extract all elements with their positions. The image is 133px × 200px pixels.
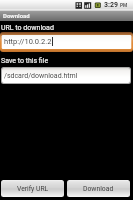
- staticText: PM: [120, 3, 128, 9]
- other: Status icons: [0, 0, 133, 10]
- staticText: /sdcard/download.html: [4, 72, 78, 80]
- staticText: Download: [83, 185, 114, 193]
- button[interactable]: http://10.0.2.2: [0, 32, 133, 52]
- staticText: Download: [3, 12, 30, 19]
- staticText: 3:29: [104, 1, 119, 9]
- button[interactable]: /sdcard/download.html: [1, 67, 131, 84]
- staticText: http://10.0.2.2: [4, 37, 52, 46]
- staticText: URL to download: [1, 24, 54, 32]
- button[interactable]: Download: [67, 180, 130, 197]
- button[interactable]: Verify URL: [1, 180, 64, 197]
- staticText: Save to this file: [1, 57, 49, 65]
- staticText: Verify URL: [17, 185, 49, 193]
